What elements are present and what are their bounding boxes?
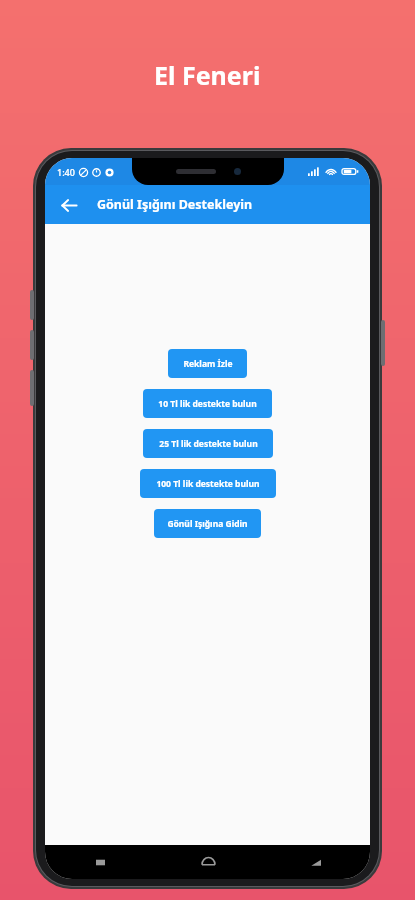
staticText: 100 Tl lik destekte bulun bbox=[156, 478, 260, 490]
staticText: Gönül Işığını Destekleyin bbox=[97, 196, 253, 213]
staticText: 1:40 bbox=[57, 166, 75, 178]
button[interactable]: 100 Tl lik destekte bulun bbox=[140, 469, 276, 498]
staticText: 10 Tl lik destekte bulun bbox=[158, 398, 257, 410]
staticText: Gönül Işığına Gidin bbox=[167, 518, 248, 530]
button[interactable]: Recents bbox=[85, 847, 115, 877]
button[interactable]: Back bbox=[53, 189, 85, 221]
button[interactable]: 10 Tl lik destekte bulun bbox=[143, 389, 272, 418]
button[interactable]: Home bbox=[193, 847, 223, 877]
button[interactable]: Gönül Işığına Gidin bbox=[154, 509, 261, 538]
button[interactable]: Reklam İzle bbox=[168, 349, 247, 378]
staticText: 25 Tl lik destekte bulun bbox=[159, 438, 258, 450]
button[interactable]: Back bbox=[300, 847, 330, 877]
staticText: Reklam İzle bbox=[183, 358, 233, 370]
staticText: El Feneri bbox=[154, 58, 261, 92]
button[interactable]: 25 Tl lik destekte bulun bbox=[143, 429, 273, 458]
